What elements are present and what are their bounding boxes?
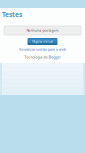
staticText: Blogger (48, 55, 60, 59)
staticText: Página inicial (31, 39, 53, 44)
button[interactable]: Visualizar versão para a web (19, 47, 66, 52)
staticText: Testes (2, 10, 22, 19)
staticText: Nenhuma postagem (26, 28, 58, 33)
staticText: Visualizar versão para a web (19, 47, 66, 52)
button[interactable]: Página inicial (27, 38, 57, 45)
staticText: Tecnologia do (24, 55, 47, 59)
button[interactable]: Blogger (48, 55, 60, 59)
